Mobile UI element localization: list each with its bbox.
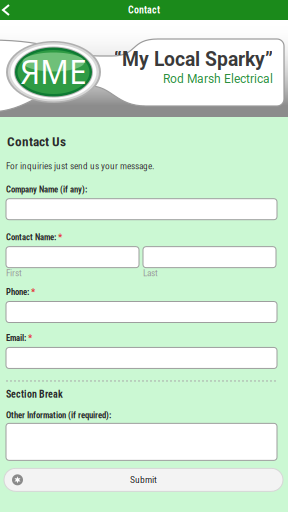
staticText: “My Local Sparky”	[114, 48, 273, 71]
staticText: Last	[143, 268, 158, 279]
button[interactable]: Submit	[0, 468, 283, 491]
staticText: Contact Us	[7, 134, 66, 150]
staticText: For inquiries just send us your message.	[6, 161, 154, 171]
button[interactable]: Back	[0, 0, 22, 20]
staticText: *	[28, 332, 32, 343]
staticText: Submit	[130, 474, 157, 485]
staticText: Rod Marsh Electrical	[163, 72, 273, 86]
staticText: Email:	[6, 333, 26, 343]
staticText: ЯME	[20, 50, 87, 93]
staticText: Company Name (if any):	[6, 185, 87, 195]
staticText: Contact	[128, 4, 160, 16]
staticText: *	[31, 287, 35, 297]
staticText: First	[6, 268, 22, 279]
staticText: Contact Name:	[6, 232, 56, 242]
staticText: Section Break	[6, 388, 63, 400]
staticText: Phone:	[6, 287, 29, 297]
staticText: Other Information (if required):	[6, 410, 111, 420]
staticText: *	[58, 232, 62, 243]
